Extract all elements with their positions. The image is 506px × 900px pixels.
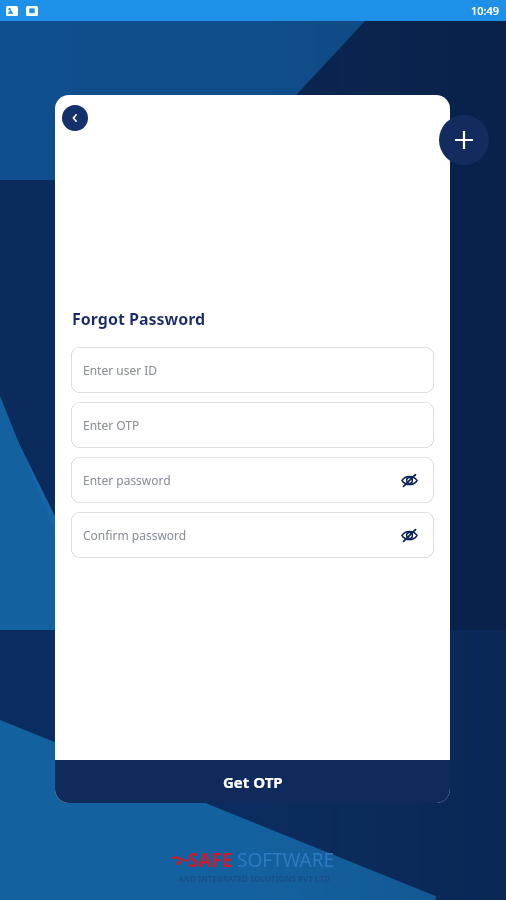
button[interactable]: Back [62,105,88,131]
staticText: Enter user ID [83,362,158,378]
staticText: Enter password [83,472,171,488]
button[interactable]: Add [439,115,489,165]
button[interactable]: Get OTP [55,760,450,803]
staticText: Get OTP [223,772,283,792]
button[interactable]: Enter OTP [71,402,434,448]
staticText: Forgot Password [72,308,206,330]
button[interactable]: Enter user ID [71,347,434,393]
staticText: AND INTEGRATED SOLUTIONS PVT LTD [178,873,330,884]
button[interactable]: Toggle password visibility [398,469,420,491]
staticText: Enter OTP [83,417,140,433]
button[interactable]: Toggle password visibility [398,524,420,546]
staticText: Confirm password [83,527,187,543]
staticText: 10:49 [471,3,500,18]
button[interactable]: Confirm password [71,512,434,558]
staticText: SOFTWARE [237,847,335,873]
staticText: SAFE [188,847,233,873]
button[interactable]: Enter password [71,457,434,503]
